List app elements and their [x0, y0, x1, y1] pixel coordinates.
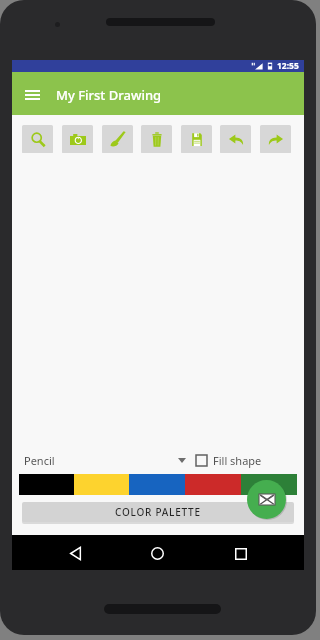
button[interactable]: Pencil	[24, 451, 186, 469]
button[interactable]: Back	[63, 541, 88, 566]
staticText: Fill shape	[213, 453, 262, 468]
button[interactable]: Redo	[260, 125, 291, 153]
button[interactable]: Camera	[62, 125, 93, 153]
staticText: COLOR PALETTE	[115, 505, 201, 519]
button[interactable]: Brush	[102, 125, 133, 153]
button[interactable]: Email	[247, 480, 286, 519]
button[interactable]: Menu	[21, 84, 43, 106]
button[interactable]: Search	[22, 125, 53, 153]
staticText: 12:55	[277, 60, 299, 72]
button[interactable]: Fill shape	[196, 451, 262, 469]
button[interactable]: Undo	[220, 125, 251, 153]
button[interactable]: COLOR PALETTE	[22, 502, 294, 522]
staticText: My First Drawing	[56, 86, 162, 104]
button[interactable]: Recents	[228, 541, 253, 566]
button[interactable]	[241, 474, 297, 495]
button[interactable]: Home	[145, 541, 170, 566]
button[interactable]: Save	[181, 125, 212, 153]
staticText: Pencil	[24, 453, 55, 468]
button[interactable]: Delete	[141, 125, 172, 153]
